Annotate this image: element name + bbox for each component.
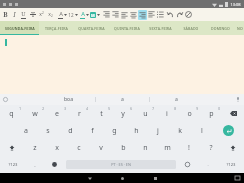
button[interactable]: z bbox=[23, 139, 46, 156]
button[interactable]: TERÇA-FEIRA bbox=[39, 21, 73, 35]
button[interactable]: B bbox=[1, 8, 10, 21]
button[interactable]: j bbox=[147, 122, 169, 139]
button[interactable]: Emoji picker bbox=[177, 156, 198, 173]
button[interactable]: t bbox=[90, 105, 112, 122]
button[interactable]: Voice input bbox=[234, 96, 241, 103]
button[interactable]: Back bbox=[86, 174, 94, 182]
button[interactable]: Text color bbox=[57, 8, 68, 21]
button[interactable]: Decrease indent bbox=[102, 8, 111, 21]
staticText: I bbox=[13, 10, 16, 19]
button[interactable]: n bbox=[134, 139, 156, 156]
button[interactable]: Clear formatting bbox=[184, 8, 193, 21]
button[interactable]: p bbox=[200, 105, 222, 122]
staticText: c bbox=[77, 143, 81, 153]
button[interactable]: DOMINGO bbox=[205, 21, 235, 35]
button[interactable]: Highlight bbox=[90, 8, 101, 21]
button[interactable]: Text color bbox=[79, 8, 90, 21]
staticText: 9 bbox=[196, 107, 198, 111]
staticText: 8 bbox=[174, 107, 176, 111]
staticText: QUINTA-FEIRA bbox=[114, 26, 140, 31]
button[interactable]: m bbox=[156, 139, 178, 156]
staticText: boa bbox=[64, 96, 73, 103]
button[interactable]: Strikethrough bbox=[28, 8, 37, 21]
staticText: U bbox=[21, 10, 26, 18]
button[interactable]: Space bbox=[66, 160, 176, 169]
button[interactable]: Underline bbox=[19, 8, 28, 21]
button[interactable]: Align bbox=[129, 10, 138, 20]
button[interactable]: i bbox=[156, 105, 178, 122]
staticText: PT · ES · EN bbox=[111, 162, 131, 167]
button[interactable]: Increase indent bbox=[111, 8, 120, 21]
button[interactable]: Redo bbox=[175, 8, 184, 21]
staticText: SEGUNDA-FEIRA bbox=[5, 26, 35, 31]
button[interactable]: Subscript bbox=[46, 8, 55, 21]
button[interactable]: Align bbox=[120, 10, 129, 20]
button[interactable]: NO bbox=[235, 21, 244, 35]
staticText: r bbox=[78, 109, 81, 119]
staticText: e bbox=[55, 109, 59, 119]
button[interactable]: g bbox=[103, 122, 125, 139]
button[interactable]: I bbox=[10, 8, 19, 21]
button[interactable]: Keyboard settings bbox=[2, 96, 9, 103]
staticText: t bbox=[100, 109, 103, 119]
button[interactable]: ?123 bbox=[0, 156, 26, 173]
button[interactable]: Text size bbox=[68, 8, 79, 21]
staticText: SEXTA-FEIRA bbox=[149, 26, 172, 31]
button[interactable]: Shift bbox=[0, 139, 23, 156]
button[interactable]: b bbox=[112, 139, 134, 156]
button[interactable]: d bbox=[59, 122, 81, 139]
button[interactable]: w bbox=[23, 105, 46, 122]
staticText: p bbox=[209, 109, 214, 119]
button[interactable]: ! bbox=[178, 139, 200, 156]
button[interactable]: f bbox=[81, 122, 103, 139]
button[interactable]: Shift bbox=[222, 139, 244, 156]
button[interactable]: h bbox=[125, 122, 147, 139]
button[interactable]: y bbox=[112, 105, 134, 122]
staticText: 7 bbox=[152, 107, 154, 111]
button[interactable]: o bbox=[178, 105, 200, 122]
staticText: ?123 bbox=[8, 162, 18, 168]
button[interactable]: a bbox=[150, 94, 203, 105]
button[interactable]: Superscript bbox=[37, 8, 46, 21]
button[interactable]: c bbox=[68, 139, 90, 156]
button[interactable]: Bulleted list bbox=[156, 8, 165, 21]
button[interactable]: SÁBADO bbox=[177, 21, 205, 35]
staticText: NO bbox=[237, 26, 243, 31]
button[interactable]: x bbox=[46, 139, 68, 156]
button[interactable]: Line spacing bbox=[147, 8, 156, 21]
button[interactable]: r bbox=[68, 105, 90, 122]
button[interactable]: ? bbox=[200, 139, 222, 156]
button[interactable]: q bbox=[0, 105, 23, 122]
staticText: l bbox=[201, 126, 203, 136]
button[interactable]: QUINTA-FEIRA bbox=[109, 21, 144, 35]
button[interactable]: l bbox=[191, 122, 213, 139]
button[interactable]: a bbox=[14, 122, 37, 139]
button[interactable]: Enter bbox=[223, 125, 234, 136]
button[interactable]: s bbox=[37, 122, 59, 139]
staticText: a bbox=[175, 96, 178, 103]
button[interactable]: Switch keyboard bbox=[233, 174, 241, 182]
button[interactable]: SEXTA-FEIRA bbox=[144, 21, 177, 35]
button[interactable]: Home bbox=[118, 174, 126, 182]
button[interactable]: a bbox=[96, 94, 149, 105]
staticText: x bbox=[55, 143, 59, 153]
button[interactable]: boa bbox=[42, 94, 95, 105]
button[interactable]: e bbox=[46, 105, 68, 122]
button[interactable]: Recents bbox=[151, 174, 159, 182]
button[interactable]: Undo bbox=[166, 8, 175, 21]
button[interactable]: v bbox=[90, 139, 112, 156]
button[interactable]: u bbox=[134, 105, 156, 122]
button[interactable]: Backspace bbox=[222, 105, 244, 122]
staticText: h bbox=[134, 126, 139, 136]
button[interactable]: QUARTA-FEIRA bbox=[73, 21, 109, 35]
button[interactable]: SEGUNDA-FEIRA bbox=[0, 21, 39, 35]
button[interactable]: k bbox=[169, 122, 191, 139]
staticText: A bbox=[59, 10, 63, 18]
button[interactable]: ?123 bbox=[217, 156, 244, 173]
staticText: B bbox=[3, 10, 8, 19]
button[interactable]: Emoji bbox=[44, 156, 65, 173]
button[interactable]: Align bbox=[138, 10, 147, 20]
staticText: a bbox=[121, 96, 124, 103]
